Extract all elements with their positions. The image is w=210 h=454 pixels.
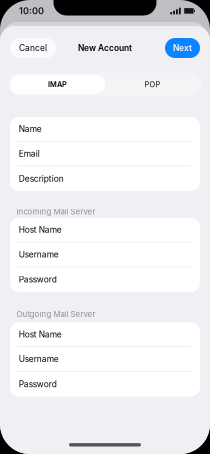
button[interactable]: Username: [10, 347, 200, 372]
staticText: Description: [19, 174, 64, 184]
button[interactable]: Username: [10, 242, 200, 267]
staticText: Host Name: [19, 329, 62, 339]
staticText: Incoming Mail Server: [16, 207, 95, 216]
button[interactable]: Description: [10, 166, 200, 191]
staticText: Cancel: [19, 43, 47, 53]
button[interactable]: Host Name: [10, 218, 200, 242]
button[interactable]: IMAP: [10, 75, 105, 94]
button[interactable]: Cancel: [10, 38, 56, 58]
button[interactable]: Host Name: [10, 322, 200, 347]
button[interactable]: Name: [10, 117, 200, 142]
staticText: Outgoing Mail Server: [16, 309, 95, 319]
button[interactable]: Password: [10, 372, 200, 396]
staticText: New Account: [78, 43, 132, 53]
staticText: Password: [19, 274, 57, 285]
staticText: Name: [19, 124, 42, 134]
button[interactable]: POP: [105, 75, 200, 94]
staticText: Next: [173, 43, 192, 53]
staticText: IMAP: [48, 80, 67, 89]
button[interactable]: Email: [10, 142, 200, 166]
staticText: Username: [19, 354, 59, 364]
staticText: Username: [19, 249, 59, 260]
button[interactable]: Password: [10, 267, 200, 292]
staticText: Email: [19, 149, 40, 159]
button[interactable]: Next: [165, 38, 200, 58]
staticText: 10:00: [19, 5, 44, 16]
staticText: Password: [19, 379, 57, 389]
staticText: Host Name: [19, 225, 62, 235]
staticText: POP: [144, 80, 160, 89]
